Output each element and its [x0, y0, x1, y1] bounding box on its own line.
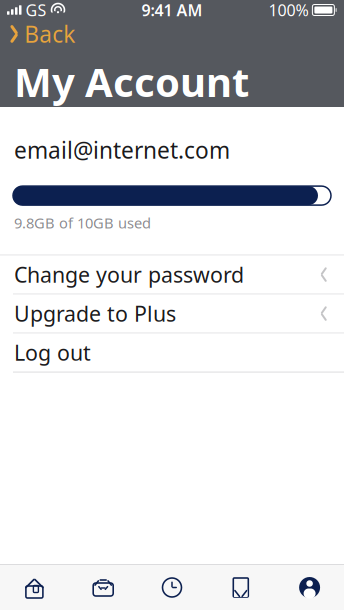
button[interactable]: Upgrade to Plus [0, 295, 344, 334]
button[interactable]: Inbox [69, 565, 138, 610]
staticText: 9.8GB of 10GB used [14, 213, 151, 233]
staticText: Upgrade to Plus [14, 299, 176, 328]
staticText: 9:41 AM [141, 0, 202, 21]
staticText: Change your password [14, 260, 244, 289]
staticText: Back [24, 19, 75, 49]
button[interactable]: Back [0, 19, 75, 49]
staticText: My Account [14, 55, 249, 108]
button[interactable]: Recents [138, 565, 206, 610]
button[interactable]: Saved [206, 565, 275, 610]
staticText: GS [25, 0, 46, 21]
staticText: Log out [14, 338, 91, 367]
button[interactable]: Log out [0, 334, 344, 373]
staticText: email@internet.com [14, 135, 230, 165]
staticText: 100% [268, 0, 308, 21]
button[interactable]: Change your password [0, 256, 344, 295]
button[interactable]: Account [275, 565, 344, 610]
button[interactable]: Home [0, 565, 69, 610]
